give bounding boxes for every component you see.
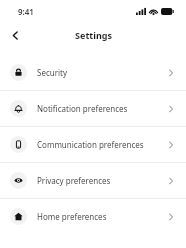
staticText: 9:41 bbox=[18, 6, 34, 17]
button[interactable]: Communication preferences bbox=[0, 127, 186, 162]
staticText: Privacy preferences bbox=[37, 175, 167, 186]
button[interactable]: Security bbox=[0, 55, 186, 90]
button[interactable]: Privacy preferences bbox=[0, 163, 186, 198]
staticText: Home preferences bbox=[37, 211, 167, 222]
staticText: Communication preferences bbox=[37, 139, 167, 150]
staticText: Settings bbox=[75, 29, 112, 41]
button[interactable]: Home preferences bbox=[0, 199, 186, 234]
staticText: Notification preferences bbox=[37, 103, 167, 114]
button[interactable]: Back bbox=[4, 24, 26, 46]
button[interactable]: Notification preferences bbox=[0, 91, 186, 126]
staticText: Security bbox=[37, 67, 167, 78]
